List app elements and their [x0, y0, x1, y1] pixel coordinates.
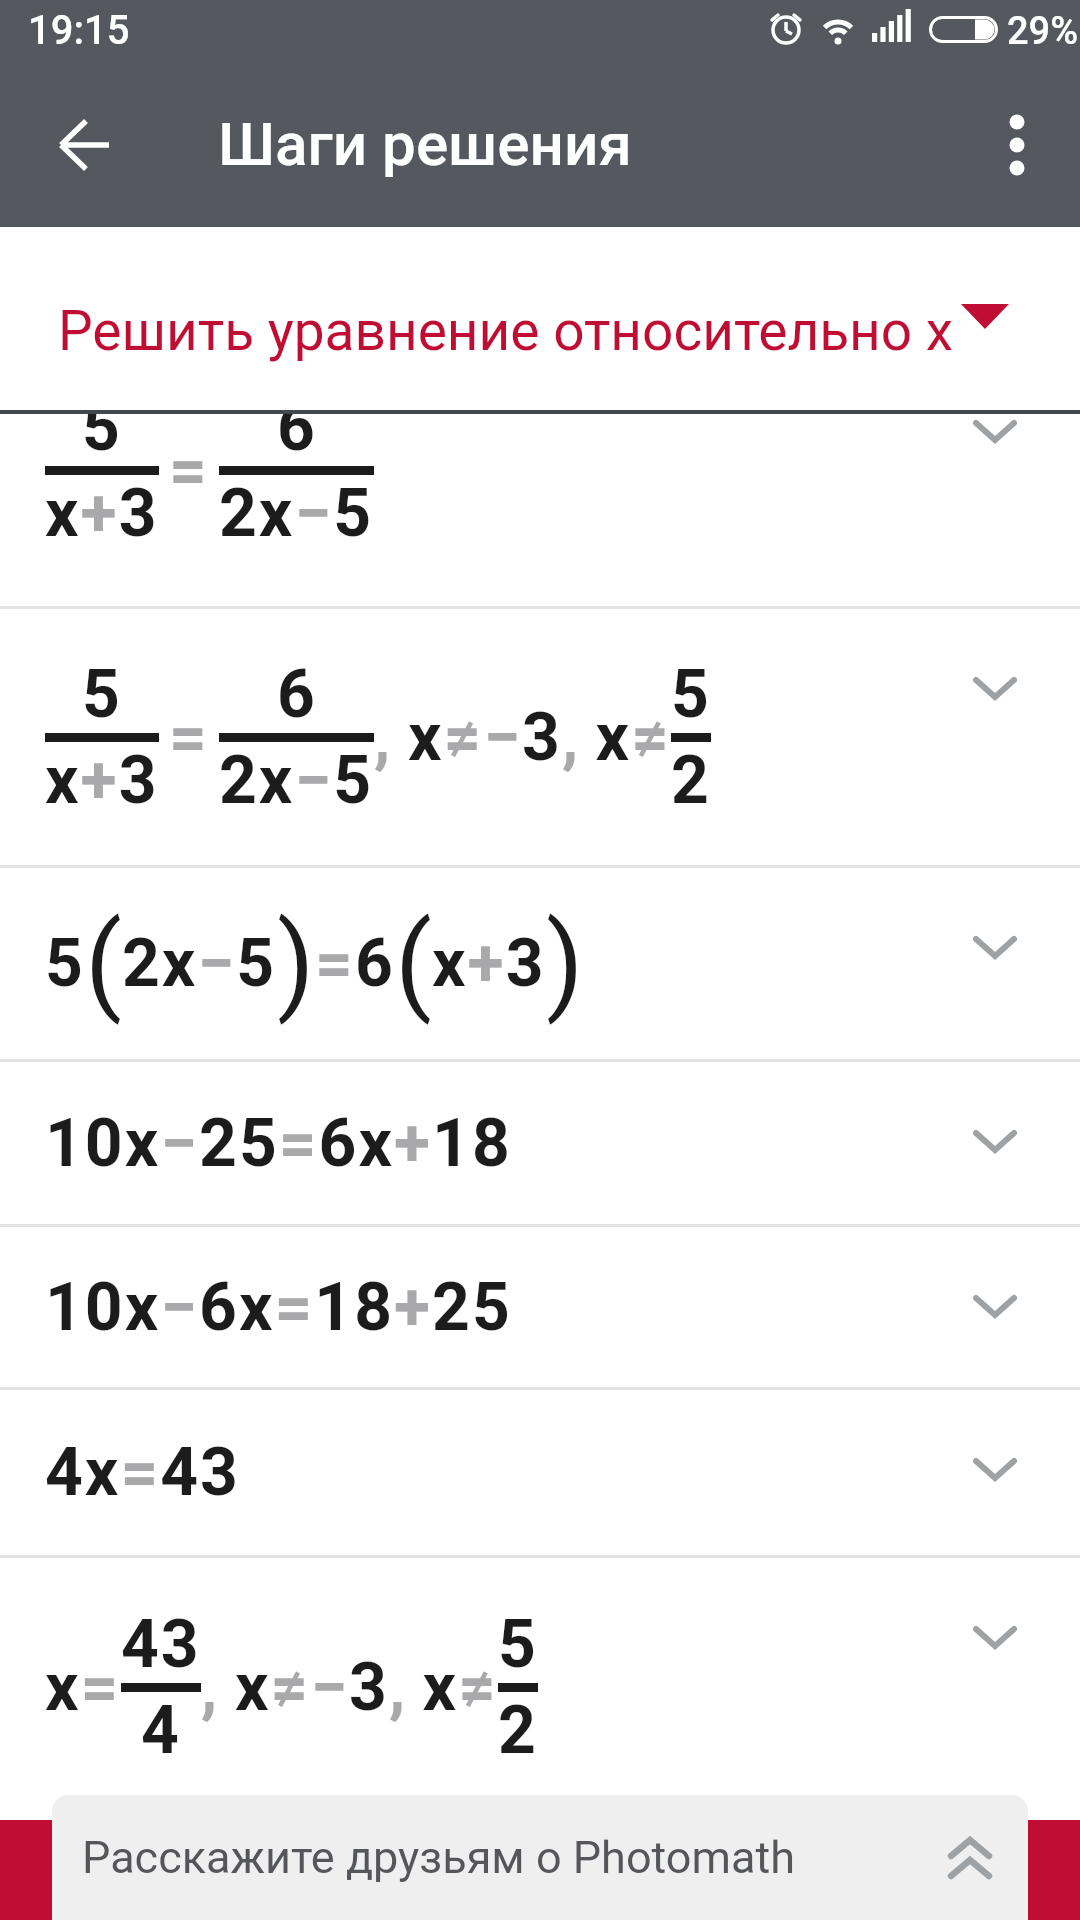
staticText: 4x=43: [45, 1434, 240, 1511]
staticText: x+3: [45, 475, 159, 552]
staticText: 2x−5: [219, 475, 374, 552]
staticText: Решить уравнение относительно x: [58, 299, 954, 363]
staticText: 5: [45, 925, 85, 1002]
staticText: 2x−5: [122, 925, 277, 1002]
button[interactable]: 5: [0, 609, 1080, 865]
staticText: 2: [671, 742, 711, 819]
staticText: 6: [277, 414, 317, 466]
staticText: x+3: [45, 742, 159, 819]
staticText: Шаги решения: [218, 109, 632, 179]
staticText: 2: [498, 1692, 538, 1769]
staticText: 5: [671, 656, 711, 733]
staticText: ): [277, 900, 315, 1027]
staticText: 4: [141, 1692, 181, 1769]
staticText: 5: [498, 1606, 538, 1683]
button[interactable]: 10x−25=6x+18: [0, 1062, 1080, 1224]
staticText: x≠−3, x≠: [408, 699, 671, 776]
staticText: =: [315, 925, 355, 1002]
staticText: 2x−5: [219, 742, 374, 819]
staticText: 29%: [1007, 9, 1079, 54]
button[interactable]: Расскажите друзьям о Photomath: [52, 1795, 1028, 1920]
staticText: 43: [121, 1606, 201, 1683]
button[interactable]: Решить уравнение относительно x: [0, 227, 1080, 410]
staticText: =: [169, 432, 209, 509]
button[interactable]: x=: [0, 1558, 1080, 1816]
staticText: ,: [374, 699, 408, 776]
staticText: x+3: [432, 925, 546, 1002]
button[interactable]: 5: [0, 414, 1080, 606]
staticText: ,: [201, 1649, 235, 1726]
staticText: =: [169, 699, 209, 776]
staticText: 19:15: [28, 7, 130, 54]
button[interactable]: [985, 100, 1049, 190]
button[interactable]: [40, 100, 130, 190]
staticText: 6: [277, 656, 317, 733]
staticText: x≠−3, x≠: [235, 1649, 498, 1726]
staticText: 5: [82, 656, 122, 733]
staticText: Расскажите друзьям о Photomath: [82, 1831, 795, 1884]
staticText: 10x−6x=18+25: [45, 1269, 512, 1346]
staticText: (: [85, 900, 122, 1027]
staticText: 6: [355, 925, 395, 1002]
staticText: (: [395, 900, 432, 1027]
button[interactable]: 5: [0, 868, 1080, 1059]
staticText: x=: [45, 1649, 121, 1726]
button[interactable]: 4x=43: [0, 1390, 1080, 1555]
staticText: 5: [82, 414, 122, 466]
staticText: 10x−25=6x+18: [45, 1105, 512, 1182]
staticText: ): [546, 900, 584, 1027]
button[interactable]: 10x−6x=18+25: [0, 1227, 1080, 1387]
